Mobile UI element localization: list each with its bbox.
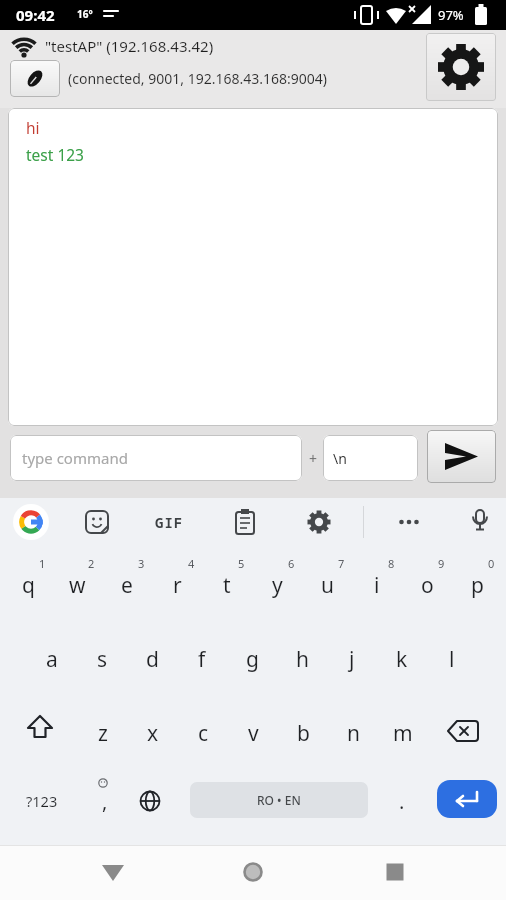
button[interactable]: a <box>28 624 76 694</box>
button[interactable]: n <box>329 698 377 768</box>
staticText: c <box>198 719 209 748</box>
staticText: RO • EN <box>257 792 301 808</box>
button[interactable] <box>456 498 504 546</box>
staticText: i <box>374 571 380 600</box>
staticText: 09:42 <box>16 5 55 25</box>
staticText: j <box>349 645 355 674</box>
staticText: o <box>421 571 434 600</box>
staticText: n <box>347 719 360 748</box>
staticText: GIF <box>155 513 184 532</box>
button[interactable]: c <box>179 698 227 768</box>
staticText: (connected, 9001, 192.168.43.168:9004) <box>68 69 328 88</box>
staticText: h <box>296 645 309 674</box>
button[interactable]: v <box>229 698 277 768</box>
button[interactable]: d <box>128 624 176 694</box>
button[interactable] <box>427 430 496 483</box>
button[interactable] <box>13 504 49 540</box>
staticText: z <box>98 719 108 748</box>
button[interactable]: RO • EN <box>190 782 368 818</box>
button[interactable] <box>437 780 497 818</box>
button[interactable]: , <box>81 766 129 836</box>
button[interactable]: b <box>279 698 327 768</box>
button[interactable]: u <box>303 550 351 620</box>
button[interactable]: \n <box>323 435 418 481</box>
staticText: 9 <box>438 556 445 571</box>
button[interactable] <box>88 847 138 897</box>
button[interactable]: q <box>4 550 52 620</box>
button[interactable]: r <box>153 550 201 620</box>
staticText: r <box>173 571 182 600</box>
button[interactable] <box>10 60 60 97</box>
button[interactable] <box>426 33 496 101</box>
button[interactable] <box>295 498 343 546</box>
staticText: 2 <box>88 556 95 571</box>
button[interactable]: f <box>178 624 226 694</box>
staticText: 7 <box>338 556 345 571</box>
staticText: m <box>393 719 413 748</box>
staticText: "testAP" (192.168.43.42) <box>45 36 214 56</box>
staticText: v <box>248 719 259 748</box>
button[interactable]: o <box>403 550 451 620</box>
staticText: 5 <box>238 556 245 571</box>
staticText: u <box>321 571 334 600</box>
button[interactable] <box>126 766 174 836</box>
staticText: p <box>471 571 484 600</box>
button[interactable] <box>228 847 278 897</box>
staticText: hi <box>26 117 40 138</box>
staticText: w <box>69 571 86 600</box>
staticText: y <box>272 571 283 600</box>
staticText: + <box>309 449 318 468</box>
staticText: 97% <box>438 6 464 24</box>
staticText: test 123 <box>26 144 84 165</box>
button[interactable]: y <box>253 550 301 620</box>
staticText: e <box>121 571 133 600</box>
staticText: 8 <box>388 556 395 571</box>
staticText: 6 <box>288 556 295 571</box>
staticText: q <box>22 571 35 600</box>
button[interactable]: g <box>228 624 276 694</box>
staticText: \n <box>333 449 347 468</box>
button[interactable] <box>8 696 72 766</box>
button[interactable]: i <box>353 550 401 620</box>
staticText: s <box>97 645 108 674</box>
button[interactable]: w <box>53 550 101 620</box>
staticText: k <box>396 645 408 674</box>
staticText: 4 <box>188 556 195 571</box>
staticText: l <box>449 645 455 674</box>
button[interactable]: type command <box>10 435 302 481</box>
button[interactable] <box>385 498 433 546</box>
button[interactable]: s <box>78 624 126 694</box>
button[interactable] <box>221 498 269 546</box>
button[interactable] <box>431 696 495 766</box>
staticText: f <box>198 645 206 674</box>
button[interactable]: t <box>203 550 251 620</box>
staticText: ?123 <box>26 791 58 811</box>
button[interactable]: z <box>79 698 127 768</box>
button[interactable] <box>370 847 420 897</box>
staticText: b <box>297 719 310 748</box>
staticText: 0 <box>488 556 495 571</box>
button[interactable]: e <box>103 550 151 620</box>
staticText: g <box>246 645 259 674</box>
staticText: d <box>146 645 159 674</box>
button[interactable]: h <box>278 624 326 694</box>
button[interactable]: p <box>453 550 501 620</box>
button[interactable]: k <box>378 624 426 694</box>
staticText: 3 <box>138 556 145 571</box>
button[interactable]: x <box>129 698 177 768</box>
button[interactable]: j <box>328 624 376 694</box>
staticText: 16° <box>77 7 93 21</box>
staticText: t <box>223 571 231 600</box>
staticText: x <box>147 719 159 748</box>
button[interactable] <box>73 498 121 546</box>
staticText: a <box>46 645 58 674</box>
staticText: , <box>102 788 108 815</box>
staticText: 1 <box>39 556 46 571</box>
button[interactable]: l <box>428 624 476 694</box>
staticText: type command <box>22 448 128 468</box>
button[interactable]: m <box>379 698 427 768</box>
staticText: . <box>399 788 405 815</box>
